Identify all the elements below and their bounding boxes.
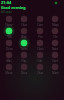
button[interactable]: Web xyxy=(18,27,30,39)
button[interactable]: Phone xyxy=(3,15,15,27)
button[interactable]: More xyxy=(49,63,61,75)
button[interactable]: Chat xyxy=(34,63,46,75)
staticText: Tunes xyxy=(20,47,28,51)
button[interactable]: Mail xyxy=(3,51,15,63)
staticText: Pics xyxy=(38,35,43,39)
staticText: Mail xyxy=(6,59,12,63)
button[interactable]: Conf xyxy=(49,51,61,63)
staticText: All apps xyxy=(1,10,13,14)
staticText: Good evening xyxy=(1,5,26,10)
staticText: Phone xyxy=(5,23,13,27)
button[interactable]: Clock xyxy=(34,39,46,51)
staticText: Play xyxy=(21,59,27,63)
staticText: Maps xyxy=(52,23,59,27)
button[interactable]: Chat xyxy=(18,15,30,27)
staticText: Note xyxy=(52,47,58,51)
button[interactable]: Maps xyxy=(49,15,61,27)
staticText: Music xyxy=(5,71,13,75)
button[interactable]: Talk xyxy=(3,27,15,39)
button[interactable]: Drive xyxy=(3,39,15,51)
button[interactable]: Docs xyxy=(18,63,30,75)
staticText: More xyxy=(52,71,59,75)
staticText: Talk xyxy=(7,35,12,39)
staticText: File xyxy=(53,35,58,39)
staticText: Chat xyxy=(21,23,27,27)
button[interactable]: Tunes xyxy=(18,39,30,51)
button[interactable]: Play xyxy=(18,51,30,63)
staticText: 21:04 xyxy=(1,0,12,5)
button[interactable]: File xyxy=(49,27,61,39)
staticText: Web xyxy=(21,35,27,39)
staticText: Clock xyxy=(37,47,44,51)
staticText: Calc xyxy=(37,59,43,63)
button[interactable]: Music xyxy=(3,63,15,75)
button[interactable]: Cam xyxy=(34,15,46,27)
staticText: Chat xyxy=(37,71,43,75)
staticText: Cam xyxy=(37,23,43,27)
staticText: Conf xyxy=(52,59,58,63)
staticText: Drive xyxy=(6,47,13,51)
staticText: Docs xyxy=(21,71,27,75)
button[interactable]: Pics xyxy=(34,27,46,39)
button[interactable]: Note xyxy=(49,39,61,51)
button[interactable]: Calc xyxy=(34,51,46,63)
